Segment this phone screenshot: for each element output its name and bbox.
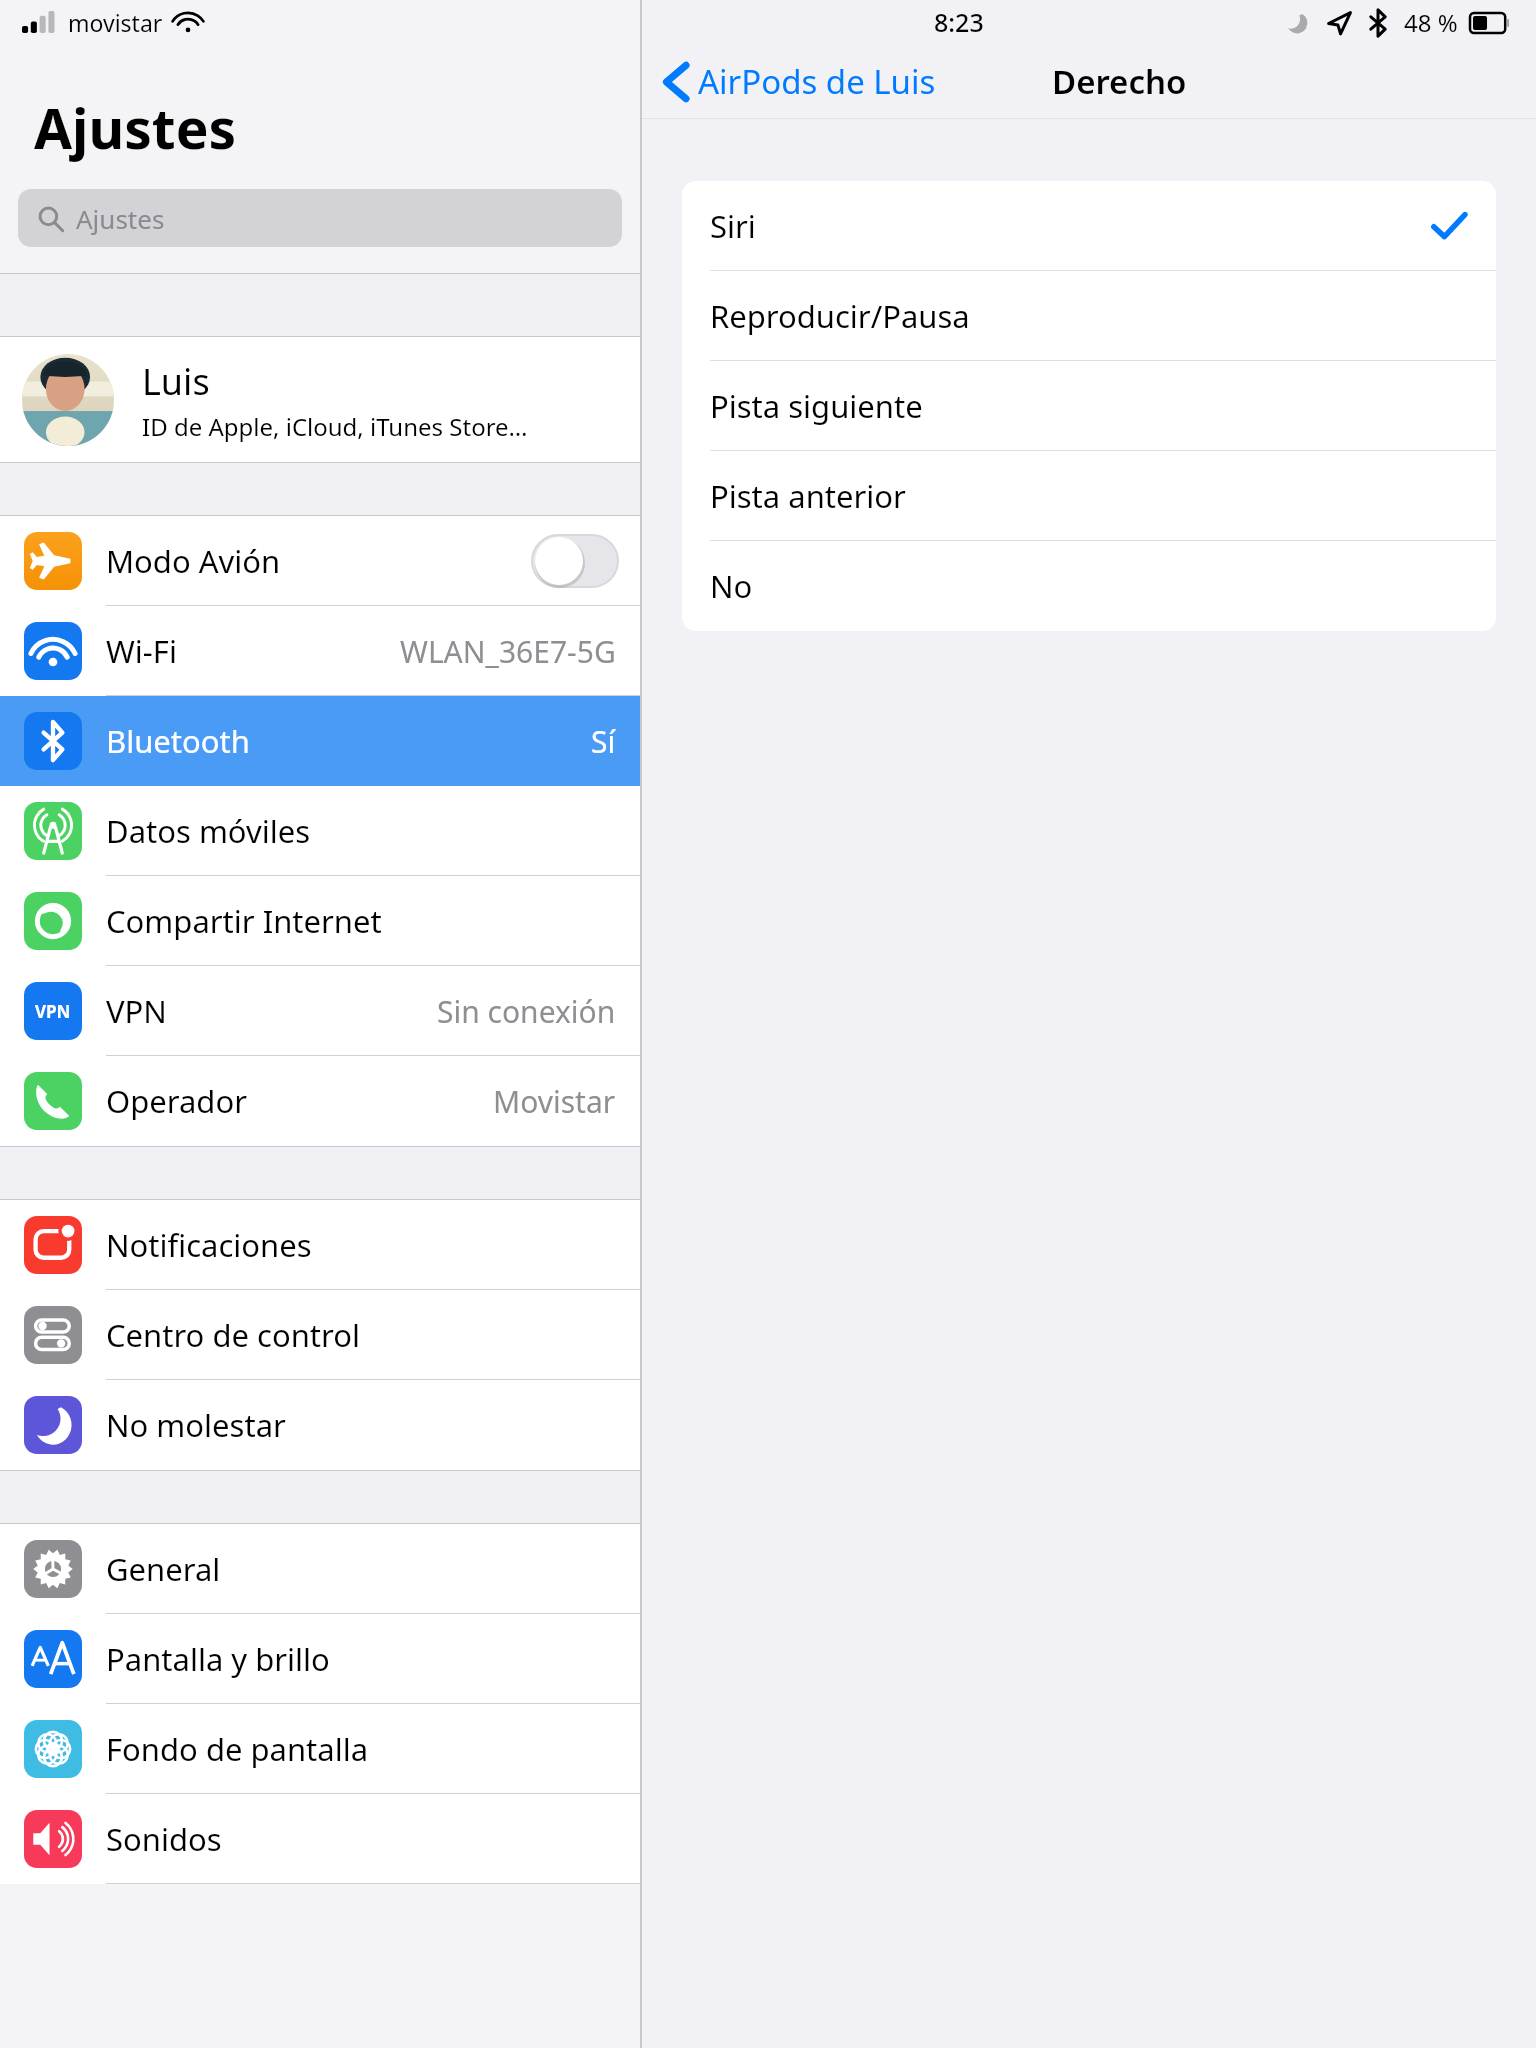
button[interactable]: Datos móviles (0, 786, 640, 876)
button[interactable]: Sonidos (0, 1794, 640, 1884)
staticText: Modo Avión (106, 540, 281, 582)
button[interactable]: Modo Avión (0, 516, 640, 606)
staticText: Wi-Fi (106, 630, 177, 672)
other: Back (664, 63, 688, 101)
button[interactable]: Ajustes (18, 189, 622, 247)
button[interactable]: Centro de control (0, 1290, 640, 1380)
staticText: Ajustes (34, 90, 237, 165)
staticText: ID de Apple, iCloud, iTunes Store… (142, 410, 528, 443)
staticText: AirPods de Luis (698, 59, 936, 104)
staticText: Siri (710, 205, 756, 247)
button[interactable]: Pista anterior (682, 451, 1496, 541)
staticText: Ajustes (76, 201, 165, 236)
button[interactable]: Operador (0, 1056, 640, 1146)
staticText: No molestar (106, 1404, 286, 1446)
staticText: Pista anterior (710, 475, 906, 517)
button[interactable]: Bluetooth (0, 696, 640, 786)
staticText: Bluetooth (106, 720, 250, 762)
button[interactable]: Luis (0, 337, 640, 462)
staticText: WLAN_36E7-5G (400, 631, 616, 672)
staticText: General (106, 1548, 221, 1590)
staticText: Derecho (1052, 59, 1187, 104)
button[interactable]: Notificaciones (0, 1200, 640, 1290)
button[interactable]: Back (664, 59, 936, 104)
staticText: Sin conexión (437, 991, 616, 1032)
button[interactable]: VPN (0, 966, 640, 1056)
staticText: Pantalla y brillo (106, 1638, 330, 1680)
staticText: 48 % (1404, 6, 1458, 39)
button[interactable]: Fondo de pantalla (0, 1704, 640, 1794)
button[interactable]: Siri (682, 181, 1496, 271)
staticText: Centro de control (106, 1314, 360, 1356)
staticText: VPN (35, 1000, 71, 1023)
button[interactable]: Pista siguiente (682, 361, 1496, 451)
staticText: Movistar (493, 1081, 616, 1122)
button[interactable]: No (682, 541, 1496, 631)
button[interactable]: Reproducir/Pausa (682, 271, 1496, 361)
staticText: VPN (106, 990, 167, 1032)
button[interactable]: General (0, 1524, 640, 1614)
staticText: Notificaciones (106, 1224, 312, 1266)
button[interactable]: No molestar (0, 1380, 640, 1470)
staticText: 8:23 (934, 5, 984, 39)
staticText: Sí (591, 721, 616, 762)
staticText: Compartir Internet (106, 900, 382, 942)
staticText: Operador (106, 1080, 247, 1122)
button[interactable]: Wi-Fi (0, 606, 640, 696)
button[interactable]: Modo Avión (532, 535, 618, 587)
button[interactable]: Pantalla y brillo (0, 1614, 640, 1704)
staticText: Sonidos (106, 1818, 222, 1860)
staticText: Fondo de pantalla (106, 1728, 369, 1770)
button[interactable]: Compartir Internet (0, 876, 640, 966)
staticText: movistar (68, 7, 163, 38)
staticText: Reproducir/Pausa (710, 295, 970, 337)
staticText: No (710, 565, 753, 607)
staticText: Datos móviles (106, 810, 311, 852)
staticText: Pista siguiente (710, 385, 923, 427)
staticText: Luis (142, 357, 210, 406)
